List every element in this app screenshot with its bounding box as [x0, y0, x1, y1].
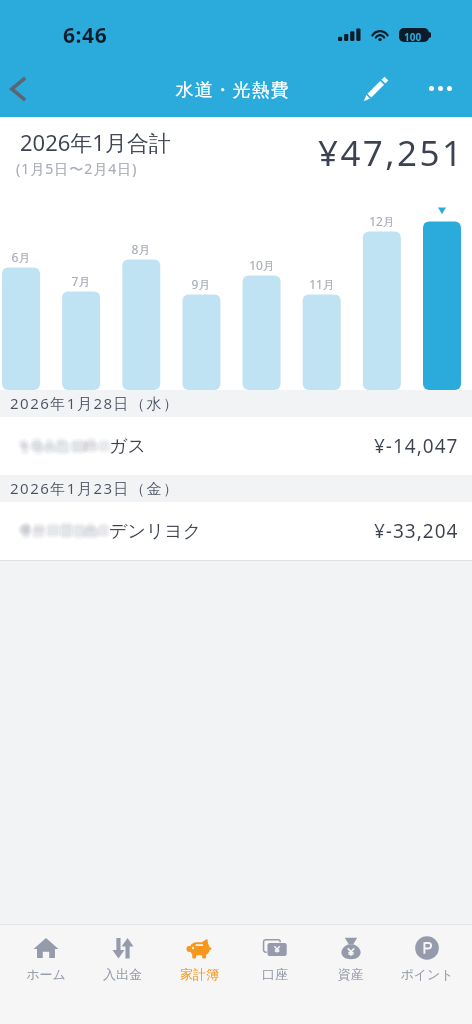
staticText: 9月	[176, 276, 226, 292]
button[interactable]: 家計簿	[161, 925, 237, 1024]
staticText: 12月	[357, 213, 407, 229]
staticText: ポイント	[400, 966, 454, 982]
staticText: 7月	[56, 273, 106, 289]
staticText: 家計簿	[180, 966, 219, 982]
button[interactable]: More options	[414, 60, 466, 117]
staticText: 2026年1月23日（金）	[10, 478, 180, 498]
staticText: 資産	[338, 966, 364, 982]
staticText: ガス	[109, 435, 146, 458]
staticText: 11月	[297, 276, 347, 292]
staticText: 2026年1月28日（水）	[10, 393, 180, 413]
button[interactable]: Back	[0, 60, 46, 117]
button[interactable]: 入出金	[84, 925, 161, 1024]
staticText: 水道・光熱費	[175, 79, 289, 102]
staticText: 8月	[116, 241, 166, 257]
button[interactable]: ガス	[0, 417, 472, 475]
staticText: (1月5日〜2月4日)	[16, 159, 138, 178]
staticText: 2026年1月合計	[20, 127, 171, 157]
staticText: 6月	[0, 249, 46, 265]
button[interactable]: 資産	[313, 925, 389, 1024]
staticText: 入出金	[103, 966, 142, 982]
staticText: 口座	[262, 966, 288, 982]
staticText: 100	[404, 30, 422, 44]
button[interactable]: デンリヨク	[0, 502, 472, 560]
staticText: 10月	[237, 257, 287, 273]
staticText: ¥-33,204	[374, 518, 459, 544]
button[interactable]: ホーム	[7, 925, 84, 1024]
staticText: ¥47,251	[318, 129, 465, 177]
staticText: デンリヨク	[109, 520, 202, 543]
button[interactable]: Edit	[352, 60, 400, 117]
staticText: ¥-14,047	[374, 433, 459, 459]
staticText: 6:46	[63, 21, 108, 50]
button[interactable]: 口座	[237, 925, 313, 1024]
button[interactable]: ポイント	[389, 925, 465, 1024]
staticText: ホーム	[26, 966, 66, 982]
